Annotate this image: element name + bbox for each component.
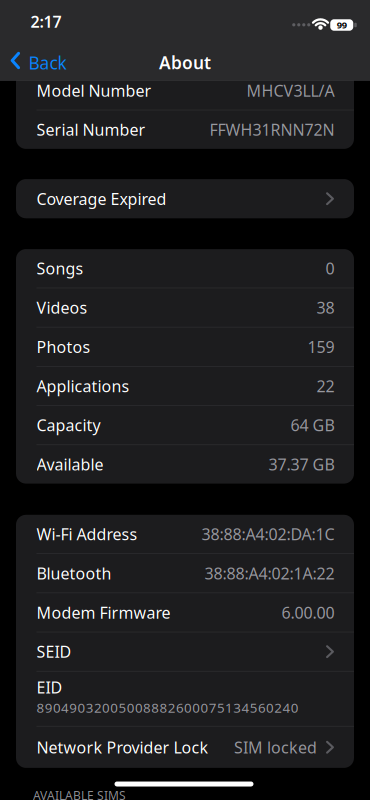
staticText: Capacity bbox=[36, 414, 100, 436]
staticText: 6.00.00 bbox=[281, 602, 334, 623]
staticText: 159 bbox=[307, 336, 334, 357]
staticText: Modem Firmware bbox=[36, 602, 170, 623]
staticText: 2:17 bbox=[30, 11, 61, 32]
staticText: FFWH31RNN72N bbox=[209, 119, 334, 140]
button[interactable]: Coverage Expired bbox=[16, 179, 354, 218]
staticText: 38:88:A4:02:1A:22 bbox=[204, 563, 334, 584]
staticText: Applications bbox=[36, 375, 129, 396]
staticText: Available bbox=[36, 454, 103, 475]
button[interactable]: Network Provider Lock bbox=[16, 727, 354, 768]
staticText: 38 bbox=[316, 297, 334, 318]
staticText: Coverage Expired bbox=[36, 188, 166, 209]
staticText: Videos bbox=[36, 297, 87, 318]
staticText: 38:88:A4:02:DA:1C bbox=[201, 523, 334, 545]
staticText: SEID bbox=[36, 641, 71, 662]
staticText: 22 bbox=[316, 375, 334, 396]
staticText: 99 bbox=[337, 19, 347, 31]
staticText: EID bbox=[36, 677, 62, 698]
staticText: 0 bbox=[325, 258, 334, 279]
staticText: Photos bbox=[36, 336, 90, 357]
button[interactable]: Back bbox=[11, 51, 67, 74]
staticText: Serial Number bbox=[36, 119, 145, 140]
staticText: Model Number bbox=[36, 80, 151, 101]
staticText: About bbox=[159, 51, 211, 74]
staticText: Bluetooth bbox=[36, 563, 111, 584]
staticText: Songs bbox=[36, 258, 83, 279]
staticText: 37.37 GB bbox=[268, 454, 334, 475]
staticText: 89049032005008882600075134560240 bbox=[36, 699, 299, 716]
staticText: MHCV3LL/A bbox=[246, 80, 334, 101]
staticText: 64 GB bbox=[290, 414, 334, 436]
staticText: AVAILABLE SIMS bbox=[33, 787, 126, 800]
button[interactable]: SEID bbox=[16, 632, 354, 671]
staticText: Back bbox=[29, 51, 67, 74]
staticText: Network Provider Lock bbox=[36, 737, 208, 758]
staticText: SIM locked bbox=[234, 737, 317, 758]
staticText: Wi-Fi Address bbox=[36, 523, 137, 545]
